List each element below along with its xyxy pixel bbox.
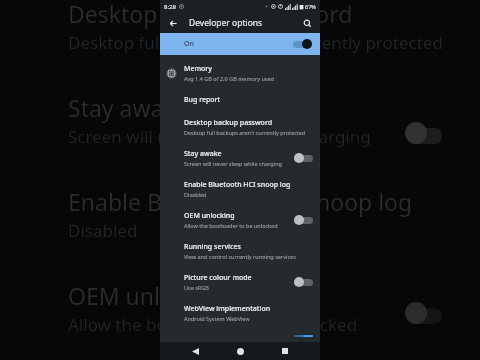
button[interactable]: Running services — [160, 237, 320, 265]
staticText: Disabled — [184, 191, 207, 198]
button[interactable]: Back — [185, 342, 205, 360]
staticText: Stay awake — [184, 149, 222, 159]
staticText: WebView implementation — [184, 304, 271, 314]
staticText: 8:28 — [164, 3, 176, 11]
staticText: Use sRGB — [184, 284, 209, 291]
button[interactable]: Enable Bluetooth HCI snoop log — [160, 175, 320, 203]
staticText: Screen will never sleep while charging — [184, 160, 282, 167]
button[interactable]: WebView implementation — [160, 299, 320, 327]
staticText: Desktop backup password — [68, 0, 353, 29]
staticText: OEM unlocking — [184, 211, 235, 221]
button[interactable]: OEM unlocking — [160, 206, 320, 234]
button[interactable]: Search — [299, 15, 315, 31]
staticText: On — [184, 39, 194, 49]
button[interactable]: Bug report — [160, 90, 320, 110]
staticText: Bug report — [184, 95, 221, 105]
button[interactable]: Recents — [275, 342, 295, 360]
staticText: Memory — [184, 64, 213, 74]
staticText: 67% — [305, 3, 316, 10]
staticText: View and control currently running servi… — [184, 253, 296, 260]
staticText: Disabled — [68, 219, 138, 242]
button[interactable]: Back — [165, 15, 181, 31]
staticText: Allow the bootloader to be unlocked — [184, 222, 278, 229]
staticText: Desktop full backups aren't currently pr… — [68, 31, 443, 54]
staticText: Enable Bluetooth HCI snoop log — [68, 186, 413, 217]
button[interactable]: On — [160, 33, 320, 55]
button[interactable]: Stay awake — [160, 144, 320, 172]
button[interactable]: Automatic system updates — [160, 330, 320, 342]
button[interactable]: Picture colour mode — [160, 268, 320, 296]
staticText: Allow the bootloader to be unlocked — [68, 313, 358, 336]
staticText: Enable Bluetooth HCI snoop log — [184, 180, 291, 190]
staticText: OEM unlocking — [68, 280, 232, 311]
staticText: Desktop backup password — [184, 118, 273, 128]
button[interactable]: Home — [230, 342, 250, 360]
button[interactable]: Desktop backup password — [160, 113, 320, 141]
staticText: Running services — [184, 242, 241, 252]
staticText: Stay awake — [68, 92, 189, 123]
staticText: Android System WebView — [184, 315, 250, 322]
staticText: Avg 1.4 GB of 2.0 GB memory used — [184, 75, 274, 82]
staticText: Picture colour mode — [184, 273, 252, 283]
staticText: Developer options — [189, 17, 263, 29]
staticText: Desktop full backups aren't currently pr… — [184, 129, 306, 136]
staticText: Screen will never sleep while charging — [68, 125, 371, 148]
button[interactable]: Memory — [160, 59, 320, 87]
